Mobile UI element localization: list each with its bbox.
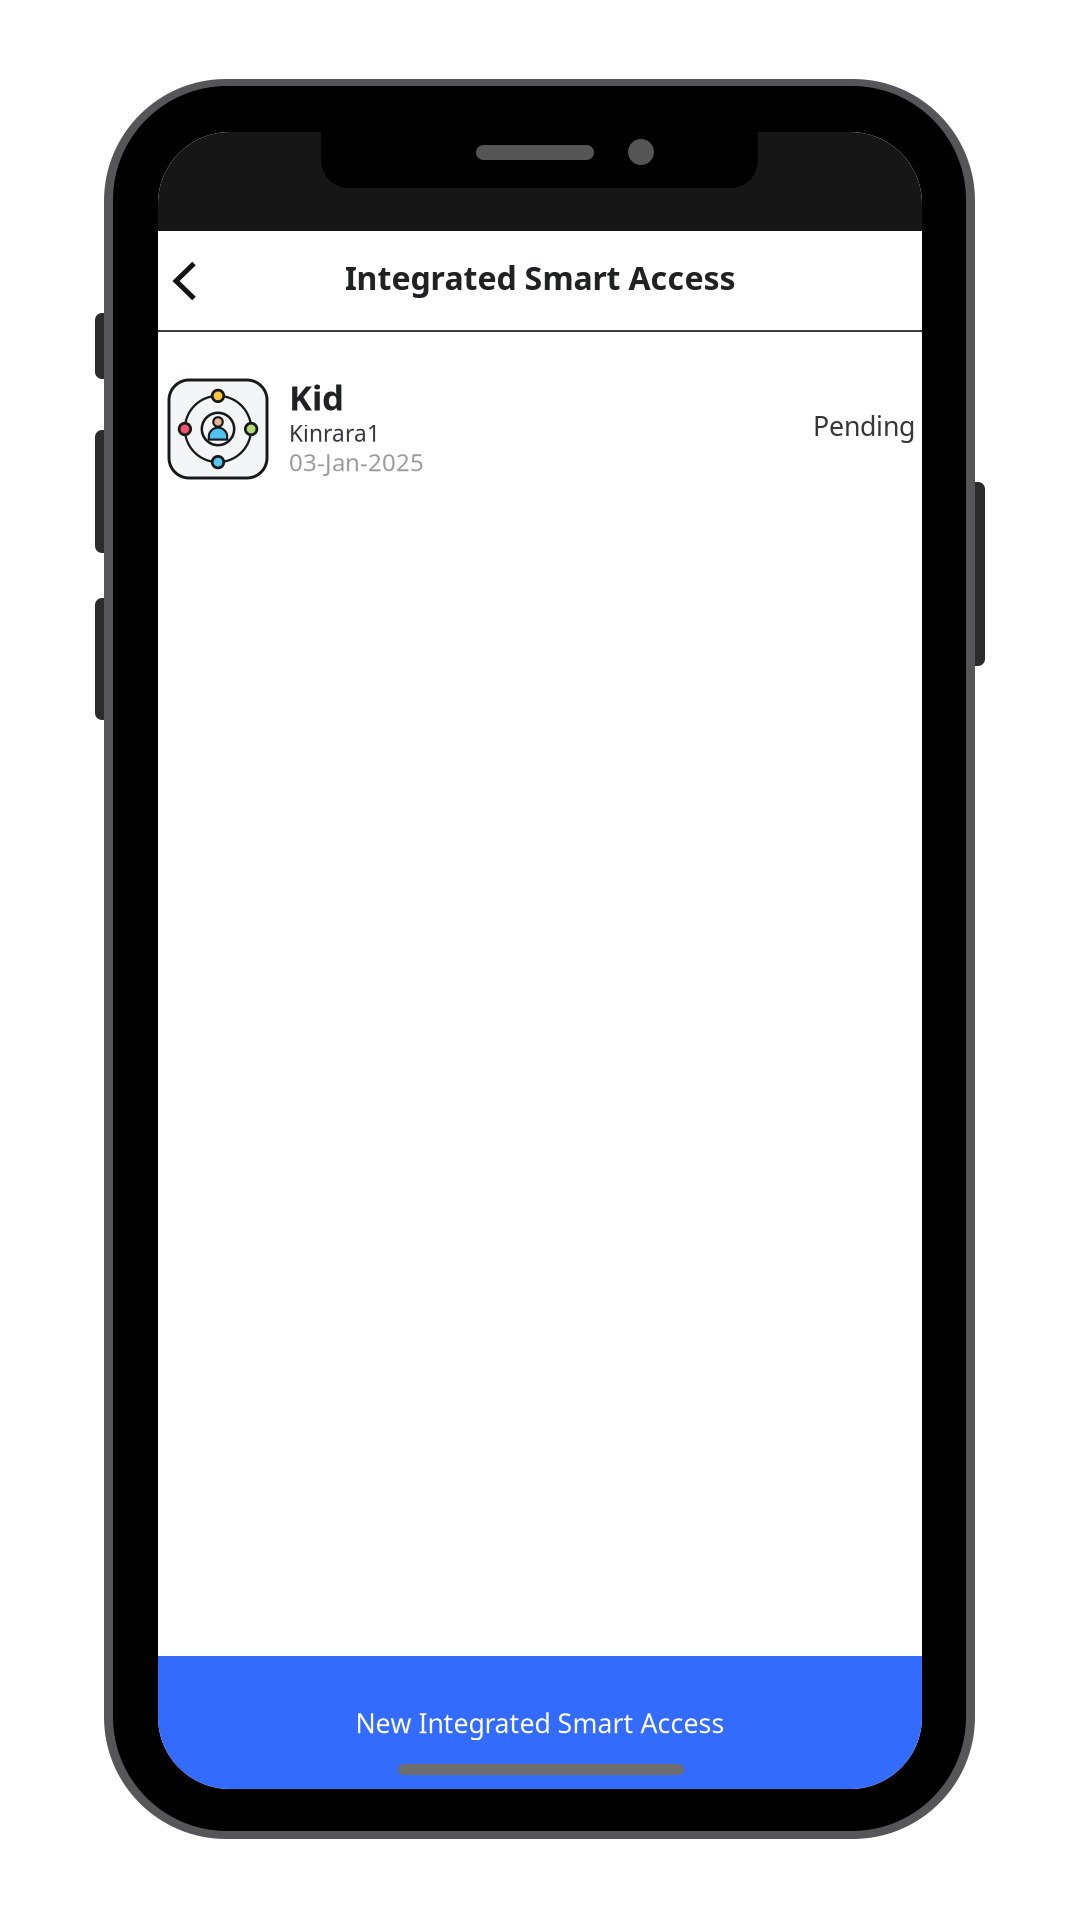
staticText: Pending <box>813 408 915 443</box>
staticText: Integrated Smart Access <box>344 256 735 299</box>
staticText: Kid <box>289 374 344 420</box>
button[interactable]: Kid <box>158 332 922 482</box>
staticText: Kinrara1 <box>289 418 380 448</box>
staticText: New Integrated Smart Access <box>355 1705 724 1741</box>
staticText: 03-Jan-2025 <box>289 446 424 478</box>
button[interactable]: Back <box>155 246 215 316</box>
button[interactable]: New Integrated Smart Access <box>158 1656 922 1789</box>
